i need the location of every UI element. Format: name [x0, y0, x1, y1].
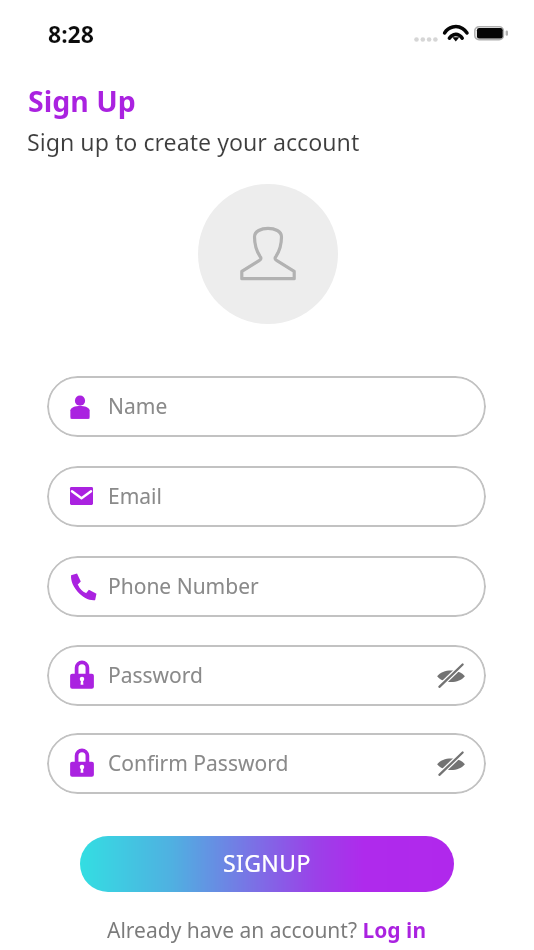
button[interactable]: SIGNUP: [80, 836, 454, 892]
button[interactable]: Confirm Password: [47, 733, 486, 794]
staticText: Name: [108, 392, 168, 421]
staticText: 8:28: [48, 18, 94, 49]
staticText: Password: [108, 661, 203, 690]
staticText: SIGNUP: [223, 847, 311, 878]
button[interactable]: Show password: [423, 645, 479, 706]
staticText: Sign Up: [28, 82, 136, 121]
staticText: Confirm Password: [108, 749, 289, 778]
button[interactable]: Show password: [423, 733, 479, 794]
staticText: Phone Number: [108, 572, 259, 601]
button[interactable]: Email: [47, 466, 486, 527]
button[interactable]: Password: [47, 645, 486, 706]
staticText: Sign up to create your account: [27, 126, 360, 158]
button[interactable]: Name: [47, 376, 486, 437]
button[interactable]: Profile photo: [198, 184, 338, 324]
button[interactable]: Already have an account? Log in: [107, 916, 427, 945]
button[interactable]: Phone Number: [47, 556, 486, 617]
staticText: Email: [108, 482, 162, 511]
